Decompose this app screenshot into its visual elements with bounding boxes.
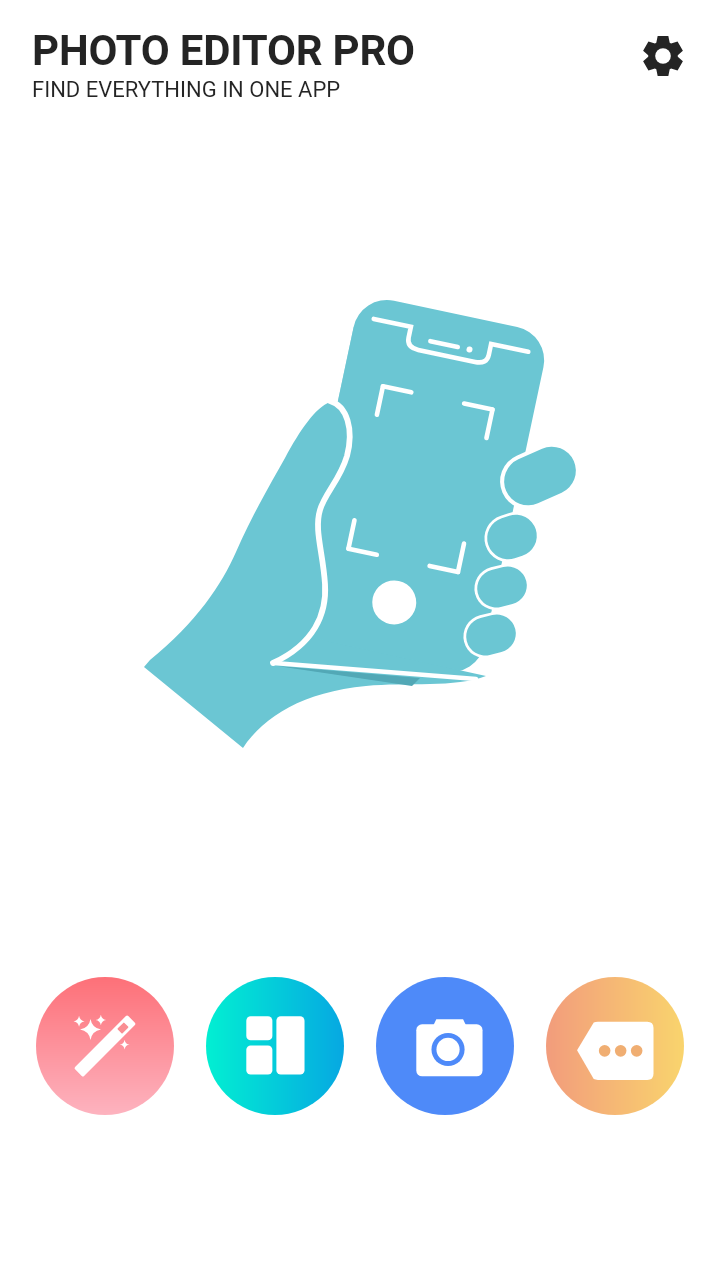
button[interactable]: Camera [376,977,514,1115]
button[interactable]: Collage [206,977,344,1115]
staticText: FIND EVERYTHING IN ONE APP [32,77,341,103]
button[interactable]: Chat [546,977,684,1115]
staticText: PHOTO EDITOR PRO [32,26,415,75]
button[interactable]: Settings [634,27,692,85]
button[interactable]: Magic enhance [36,977,174,1115]
